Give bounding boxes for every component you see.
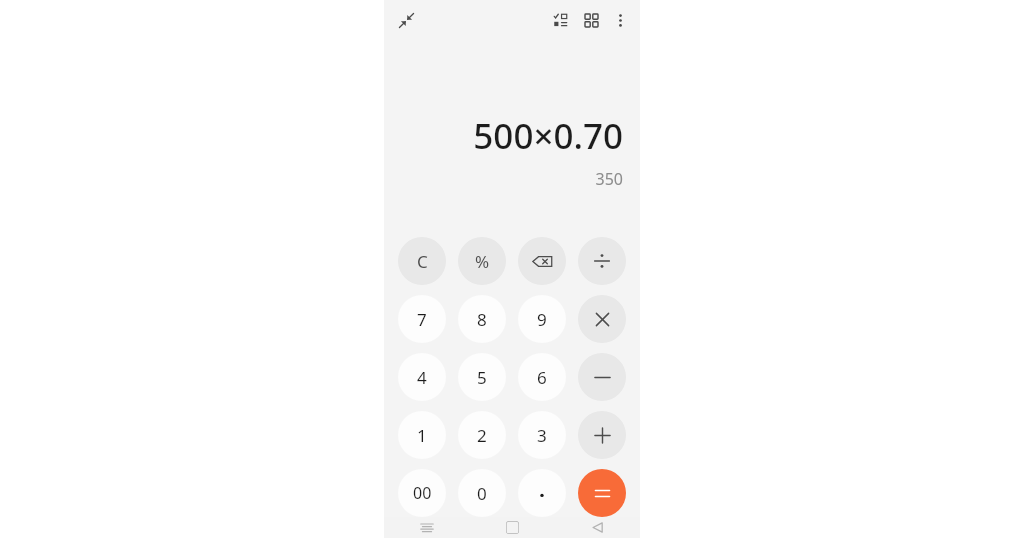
button[interactable] <box>578 353 626 401</box>
button[interactable]: C <box>398 237 446 285</box>
button[interactable]: 8 <box>458 295 506 343</box>
button[interactable] <box>518 469 566 517</box>
staticText: 8 <box>477 308 487 331</box>
button[interactable]: Unit converter <box>548 8 572 32</box>
staticText: 0 <box>477 482 487 505</box>
button[interactable]: 0 <box>458 469 506 517</box>
button[interactable]: % <box>458 237 506 285</box>
staticText: 00 <box>413 482 432 504</box>
button[interactable] <box>578 469 626 517</box>
button[interactable]: 3 <box>518 411 566 459</box>
button[interactable]: 7 <box>398 295 446 343</box>
button[interactable]: History grid <box>579 8 603 32</box>
staticText: 500×0.70 <box>473 112 623 160</box>
staticText: 6 <box>537 366 547 389</box>
staticText: 7 <box>417 308 427 331</box>
button[interactable]: Collapse <box>394 8 418 32</box>
button[interactable]: Home <box>470 517 555 538</box>
button[interactable]: 1 <box>398 411 446 459</box>
staticText: 4 <box>417 366 427 389</box>
button[interactable] <box>578 411 626 459</box>
staticText: 9 <box>537 308 547 331</box>
staticText: C <box>417 250 428 273</box>
button[interactable]: More options <box>608 8 632 32</box>
staticText: 3 <box>537 424 547 447</box>
staticText: 1 <box>417 424 427 447</box>
button[interactable]: 2 <box>458 411 506 459</box>
button[interactable]: 5 <box>458 353 506 401</box>
button[interactable]: 9 <box>518 295 566 343</box>
button[interactable]: 6 <box>518 353 566 401</box>
button[interactable]: 00 <box>398 469 446 517</box>
staticText: 5 <box>477 366 487 389</box>
button[interactable]: Recents <box>384 517 470 538</box>
button[interactable] <box>578 237 626 285</box>
staticText: 2 <box>477 424 487 447</box>
button[interactable]: Backspace <box>518 237 566 285</box>
staticText: % <box>475 250 490 273</box>
button[interactable]: 4 <box>398 353 446 401</box>
button[interactable] <box>578 295 626 343</box>
button[interactable]: Back <box>555 517 640 538</box>
staticText: 350 <box>595 168 623 190</box>
